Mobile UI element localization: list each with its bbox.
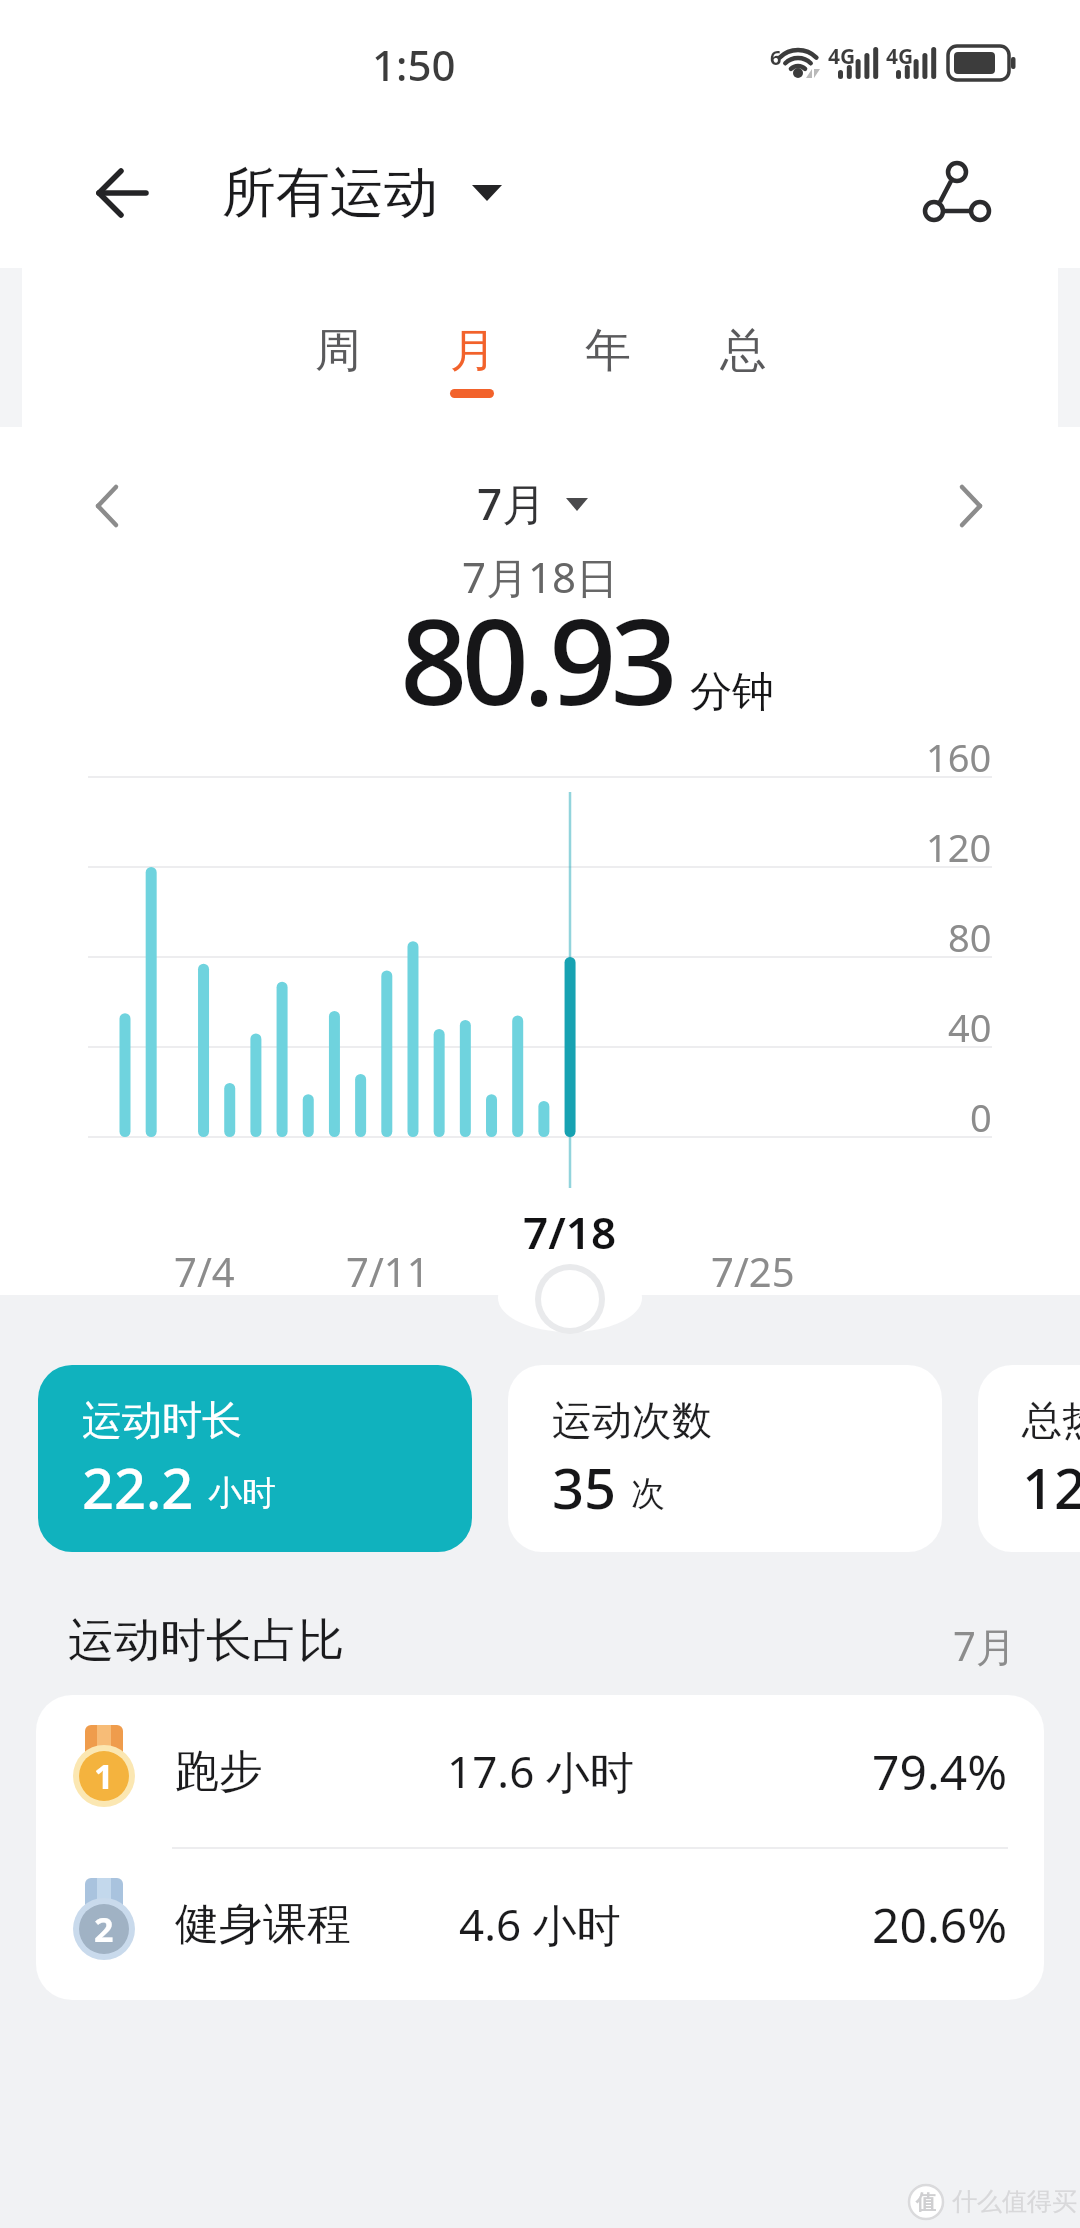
- button[interactable]: [910, 148, 1000, 238]
- staticText: 运动时长占比: [68, 1612, 344, 1670]
- button[interactable]: 周: [270, 322, 405, 380]
- button[interactable]: 运动时长: [38, 1365, 472, 1552]
- staticText: 79.4%: [872, 1739, 1008, 1804]
- staticText: 1:50: [372, 36, 456, 93]
- button[interactable]: [930, 466, 1020, 546]
- staticText: 7/11: [346, 1244, 430, 1298]
- staticText: 7/18: [523, 1202, 617, 1262]
- staticText: 80: [948, 911, 992, 963]
- staticText: 0: [970, 1091, 992, 1143]
- staticText: 40: [948, 1001, 992, 1053]
- button[interactable]: 7月: [0, 473, 1080, 533]
- staticText: 1252: [1022, 1449, 1080, 1525]
- staticText: 跑步: [175, 1744, 263, 1799]
- staticText: 4.6 小时: [459, 1894, 621, 1954]
- staticText: 运动时长: [82, 1395, 242, 1445]
- staticText: 20.6%: [872, 1892, 1008, 1957]
- staticText: 月: [450, 322, 496, 380]
- staticText: 1: [94, 1753, 114, 1799]
- staticText: 35: [552, 1449, 617, 1525]
- staticText: 4G: [886, 42, 914, 71]
- staticText: 周: [315, 322, 361, 380]
- button[interactable]: 月: [405, 322, 540, 380]
- staticText: 什么值得买: [952, 2186, 1077, 2217]
- button[interactable]: [60, 466, 150, 546]
- staticText: 120: [926, 821, 992, 873]
- staticText: 22.2: [82, 1449, 194, 1525]
- staticText: 6: [770, 44, 782, 71]
- staticText: 年: [585, 322, 631, 380]
- staticText: 80.93: [400, 579, 673, 740]
- staticText: 2: [94, 1906, 114, 1952]
- button[interactable]: 1: [36, 1695, 1044, 1847]
- staticText: 小时: [208, 1472, 276, 1515]
- button[interactable]: 总热量: [978, 1365, 1080, 1552]
- staticText: 总: [720, 322, 766, 380]
- button[interactable]: [76, 148, 166, 238]
- button[interactable]: 运动次数: [508, 1365, 942, 1552]
- staticText: 17.6 小时: [447, 1741, 634, 1801]
- staticText: 4G: [828, 42, 856, 71]
- staticText: 7月: [477, 473, 547, 533]
- staticText: 次: [631, 1472, 665, 1515]
- button[interactable]: 年: [540, 322, 675, 380]
- staticText: 运动次数: [552, 1395, 712, 1445]
- staticText: 7/4: [174, 1244, 235, 1298]
- button[interactable]: 2: [36, 1848, 1044, 2000]
- staticText: 健身课程: [175, 1897, 351, 1952]
- staticText: 160: [926, 731, 992, 783]
- staticText: 7/25: [711, 1244, 795, 1298]
- button[interactable]: 总: [675, 322, 810, 380]
- staticText: 分钟: [690, 666, 774, 719]
- staticText: 7月18日: [462, 548, 619, 605]
- button[interactable]: 所有运动: [200, 150, 498, 236]
- staticText: 总热量: [1022, 1395, 1080, 1445]
- staticText: 值: [916, 2190, 936, 2215]
- staticText: 所有运动: [222, 159, 438, 227]
- staticText: 7月: [953, 1618, 1016, 1673]
